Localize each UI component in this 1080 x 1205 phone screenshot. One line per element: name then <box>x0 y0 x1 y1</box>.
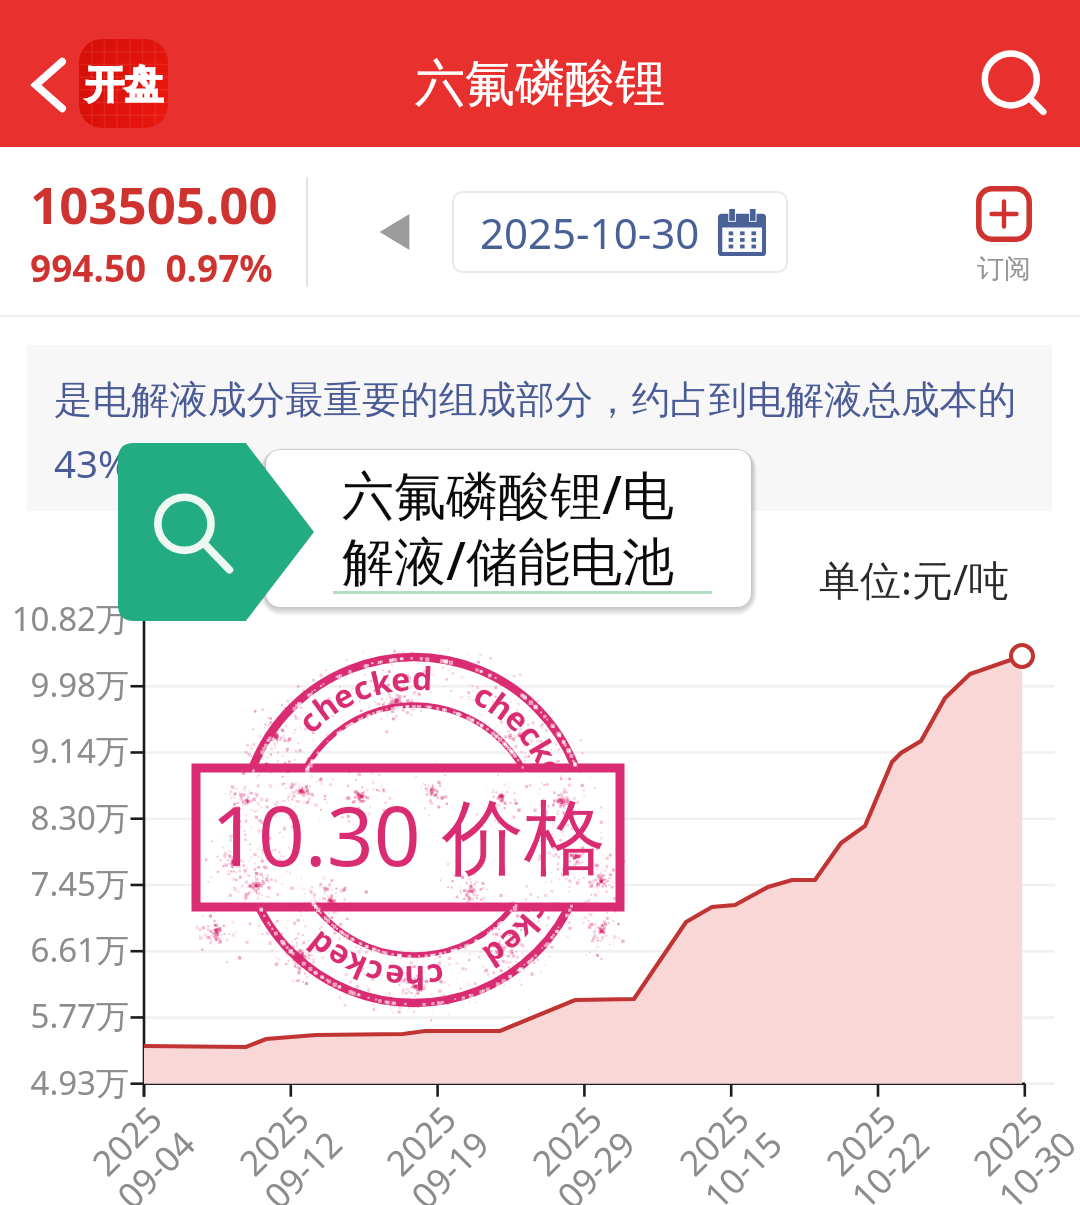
button[interactable]: 订阅 <box>944 186 1064 286</box>
staticText: d <box>250 756 298 791</box>
button[interactable]: Back <box>19 55 79 115</box>
staticText: c <box>516 891 562 930</box>
staticText: k <box>519 731 567 771</box>
staticText: c <box>424 953 447 999</box>
staticText: 六氟磷酸锂/电 解液/储能电池 <box>342 458 675 596</box>
staticText: 5.77万 <box>0 993 129 1038</box>
button[interactable]: App logo <box>79 39 168 128</box>
staticText: 9.98万 <box>0 662 129 707</box>
staticText: 六氟磷酸锂 <box>415 52 665 115</box>
staticText: d <box>475 930 516 978</box>
button[interactable]: Search <box>974 45 1054 125</box>
button[interactable]: Previous day <box>366 201 428 263</box>
staticText: k <box>504 905 550 949</box>
staticText: e <box>491 918 535 964</box>
staticText: 2025 09-19 <box>371 1091 499 1205</box>
staticText: e <box>244 779 292 809</box>
staticText: 10.30 价格 <box>211 778 606 890</box>
staticText: 6.61万 <box>0 927 129 972</box>
staticText: 2025 10-30 <box>958 1091 1080 1205</box>
staticText: 是电解液成分最重要的组成部分，约占到电解液总成本的43% <box>54 376 1019 489</box>
staticText: 9.14万 <box>0 728 129 773</box>
button[interactable]: Search tag <box>118 443 314 621</box>
staticText: h <box>248 858 296 891</box>
staticText: h <box>480 682 523 730</box>
button[interactable]: 六氟磷酸锂/电 解液/储能电池 <box>266 450 751 607</box>
staticText: c <box>242 825 286 844</box>
staticText: d <box>535 774 583 805</box>
staticText: e <box>525 874 573 912</box>
staticText: c <box>359 949 387 996</box>
staticText: 单位:元/吨 <box>819 551 1010 607</box>
button[interactable]: 2025-10-30 <box>452 191 788 273</box>
staticText: e <box>389 656 413 702</box>
staticText: e <box>324 672 362 720</box>
staticText: c <box>346 664 377 711</box>
staticText: e <box>528 751 576 787</box>
staticText: 10.82万 <box>0 596 129 641</box>
staticText: 994.50 0.97% <box>30 242 273 292</box>
staticText: 2025 09-12 <box>224 1091 352 1205</box>
staticText: e <box>317 933 357 981</box>
staticText: k <box>366 658 396 706</box>
staticText: 103505.00 <box>30 169 278 238</box>
staticText: 订阅 <box>977 252 1031 286</box>
staticText: d <box>298 921 342 968</box>
staticText: c <box>509 714 554 755</box>
staticText: 2025 10-15 <box>664 1091 792 1205</box>
staticText: e <box>381 954 407 1000</box>
staticText: c <box>255 876 302 911</box>
staticText: 开盘 <box>85 60 163 109</box>
staticText: 4.93万 <box>0 1060 129 1105</box>
staticText: c <box>467 672 502 719</box>
staticText: 7.45万 <box>0 861 129 906</box>
staticText: 2025 10-22 <box>811 1091 939 1205</box>
staticText: e <box>243 841 289 869</box>
staticText: e <box>496 696 540 742</box>
staticText: k <box>337 942 373 990</box>
staticText: 2025-10-30 <box>480 204 700 261</box>
staticText: h <box>304 683 347 731</box>
staticText: 8.30万 <box>0 795 129 840</box>
staticText: h <box>533 857 581 890</box>
staticText: c <box>288 699 331 742</box>
staticText: 2025 09-04 <box>77 1091 205 1205</box>
staticText: c <box>539 841 585 866</box>
staticText: k <box>242 803 288 827</box>
staticText: h <box>404 956 425 1000</box>
staticText: 2025 09-29 <box>517 1091 645 1205</box>
staticText: d <box>411 655 434 700</box>
